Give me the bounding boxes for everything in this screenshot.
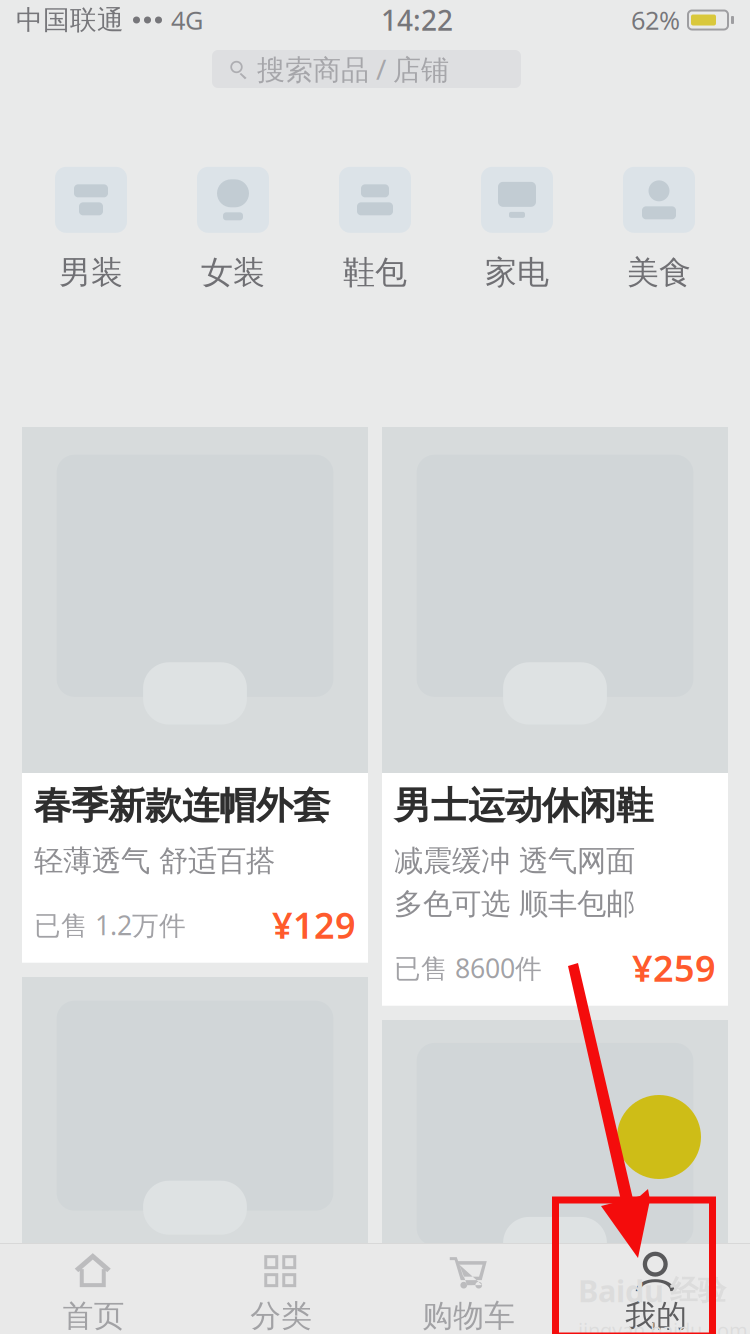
button[interactable]: 搜索商品 / 店铺 bbox=[212, 50, 521, 88]
button[interactable]: 美食 bbox=[588, 167, 730, 292]
staticText: 搜索商品 / 店铺 bbox=[257, 50, 449, 88]
button[interactable]: 男装 bbox=[20, 167, 162, 292]
button[interactable]: 首页 bbox=[0, 1243, 187, 1334]
staticText: 4G bbox=[171, 3, 203, 37]
staticText: 男士运动休闲鞋 bbox=[394, 783, 653, 829]
staticText: jingyan.baidu.com bbox=[578, 1317, 748, 1334]
staticText: 家电 bbox=[485, 253, 549, 292]
button[interactable]: 夏季透气凉鞋 bbox=[22, 977, 368, 1334]
button[interactable]: 春季新款连帽外套 bbox=[22, 427, 368, 963]
staticText: 春季新款连帽外套 bbox=[34, 783, 330, 829]
staticText: 美食 bbox=[627, 253, 691, 292]
staticText: ¥259 bbox=[632, 944, 716, 992]
staticText: 大容量双肩背包 bbox=[394, 1320, 653, 1334]
button[interactable]: 女装 bbox=[162, 167, 304, 292]
button[interactable]: 分类 bbox=[187, 1243, 375, 1334]
staticText: 我的 bbox=[625, 1297, 687, 1334]
staticText: 轻薄透气 舒适百搭 bbox=[34, 843, 275, 879]
staticText: Baidu bbox=[578, 1270, 664, 1311]
staticText: 已售 8600件 bbox=[394, 950, 542, 985]
staticText: 购物车 bbox=[422, 1297, 515, 1334]
staticText: 女装 bbox=[201, 253, 265, 292]
staticText: 多色可选 顺丰包邮 bbox=[394, 886, 635, 922]
staticText: 14:22 bbox=[381, 1, 453, 39]
staticText: 62% bbox=[631, 3, 680, 37]
button[interactable]: 我的 bbox=[562, 1243, 750, 1334]
staticText: 中国联通 bbox=[16, 4, 124, 36]
button[interactable]: 家电 bbox=[446, 167, 588, 292]
staticText: ¥129 bbox=[272, 901, 356, 949]
staticText: 已售 1.2万件 bbox=[34, 907, 186, 942]
staticText: 男装 bbox=[59, 253, 123, 292]
staticText: 减震缓冲 透气网面 bbox=[394, 843, 635, 879]
button[interactable]: 购物车 bbox=[375, 1243, 562, 1334]
staticText: 分类 bbox=[250, 1297, 312, 1334]
staticText: 夏季透气凉鞋 bbox=[34, 1287, 256, 1333]
button[interactable]: 鞋包 bbox=[304, 167, 446, 292]
staticText: 经验 bbox=[670, 1273, 726, 1308]
staticText: 鞋包 bbox=[343, 253, 407, 292]
staticText: 首页 bbox=[63, 1297, 125, 1334]
button[interactable]: 大容量双肩背包 bbox=[382, 1020, 728, 1334]
button[interactable]: 男士运动休闲鞋 bbox=[382, 427, 728, 1006]
